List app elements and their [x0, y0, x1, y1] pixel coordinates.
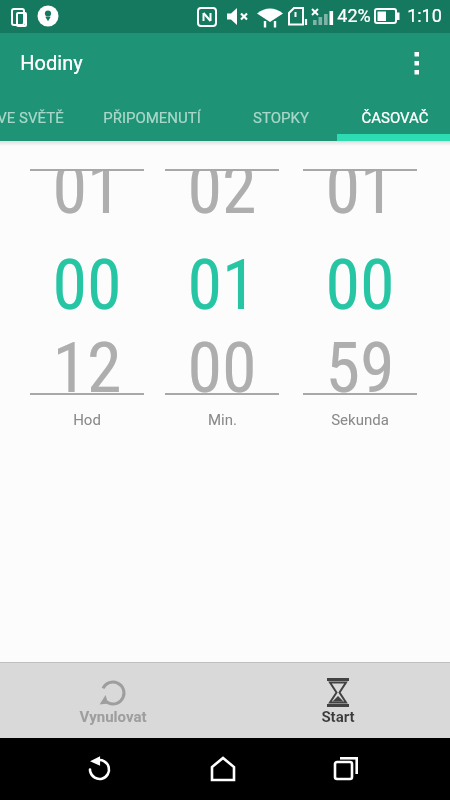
staticText: 1:10	[407, 5, 442, 26]
staticText: 59	[325, 327, 395, 409]
staticText: Vynulovat	[79, 708, 147, 726]
staticText: 01	[325, 171, 395, 216]
button[interactable]	[163, 738, 283, 800]
staticText: 02	[187, 171, 257, 216]
button[interactable]	[112, 33, 224, 141]
button[interactable]	[0, 33, 112, 141]
staticText: Start	[321, 708, 355, 726]
staticText: ČASOVAČ	[361, 109, 429, 127]
button[interactable]	[40, 738, 160, 800]
staticText: 12	[52, 327, 122, 409]
staticText: Min.	[208, 411, 237, 429]
staticText: 00	[187, 327, 257, 409]
staticText: 00	[325, 244, 395, 326]
staticText: Sekunda	[331, 411, 389, 429]
staticText: PŘIPOMENUTÍ	[103, 109, 201, 127]
staticText: VE SVĚTĚ	[0, 109, 64, 127]
staticText: 42%	[337, 5, 371, 26]
staticText: 01	[52, 171, 122, 216]
button[interactable]: Vynulovat	[0, 662, 225, 738]
button[interactable]	[286, 738, 406, 800]
staticText: Hodiny	[20, 51, 83, 74]
button[interactable]: Start	[225, 662, 450, 738]
staticText: Hod	[73, 411, 101, 429]
button[interactable]	[224, 33, 337, 141]
staticText: 01	[187, 244, 257, 326]
button[interactable]	[337, 33, 450, 141]
staticText: STOPKY	[253, 109, 309, 127]
staticText: 00	[52, 244, 122, 326]
